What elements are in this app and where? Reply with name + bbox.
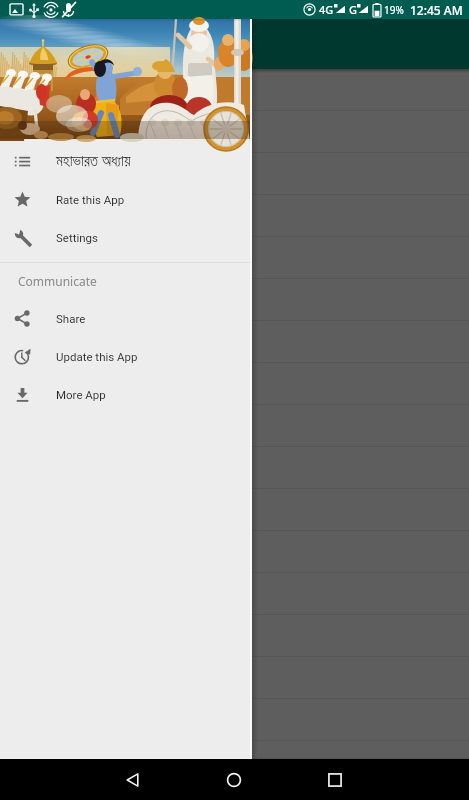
staticText: 4G: [319, 2, 334, 17]
button[interactable]: [0, 279, 469, 321]
staticText: Update this App: [56, 350, 138, 363]
button[interactable]: Share: [0, 299, 250, 337]
button[interactable]: More App: [0, 375, 250, 413]
button[interactable]: [0, 195, 469, 237]
button[interactable]: মহাভারত অধ্যায়: [0, 142, 250, 180]
button[interactable]: [0, 447, 469, 489]
staticText: 19%: [384, 3, 404, 17]
button[interactable]: Recent apps: [327, 759, 428, 800]
button[interactable]: [0, 237, 469, 279]
button[interactable]: [0, 573, 469, 615]
staticText: Communicate: [18, 273, 97, 289]
button[interactable]: Back: [125, 759, 226, 800]
button[interactable]: Update this App: [0, 337, 250, 375]
button[interactable]: Home: [226, 759, 327, 800]
button[interactable]: Settings: [0, 218, 250, 256]
staticText: মহাভারত অধ্যায়: [56, 152, 131, 170]
button[interactable]: [0, 699, 469, 741]
staticText: G: [349, 2, 357, 17]
button[interactable]: [0, 657, 469, 699]
button[interactable]: [0, 363, 469, 405]
staticText: More App: [56, 388, 106, 401]
staticText: 12:45 AM: [410, 2, 463, 18]
button[interactable]: [0, 153, 469, 195]
button[interactable]: [0, 405, 469, 447]
staticText: Share: [56, 312, 86, 325]
button[interactable]: [0, 531, 469, 573]
button[interactable]: [0, 489, 469, 531]
staticText: Rate this App: [56, 193, 125, 206]
button[interactable]: [0, 111, 469, 153]
staticText: Settings: [56, 231, 98, 244]
button[interactable]: [0, 615, 469, 657]
button[interactable]: [0, 321, 469, 363]
button[interactable]: [0, 69, 469, 111]
button[interactable]: [0, 741, 469, 759]
button[interactable]: Rate this App: [0, 180, 250, 218]
